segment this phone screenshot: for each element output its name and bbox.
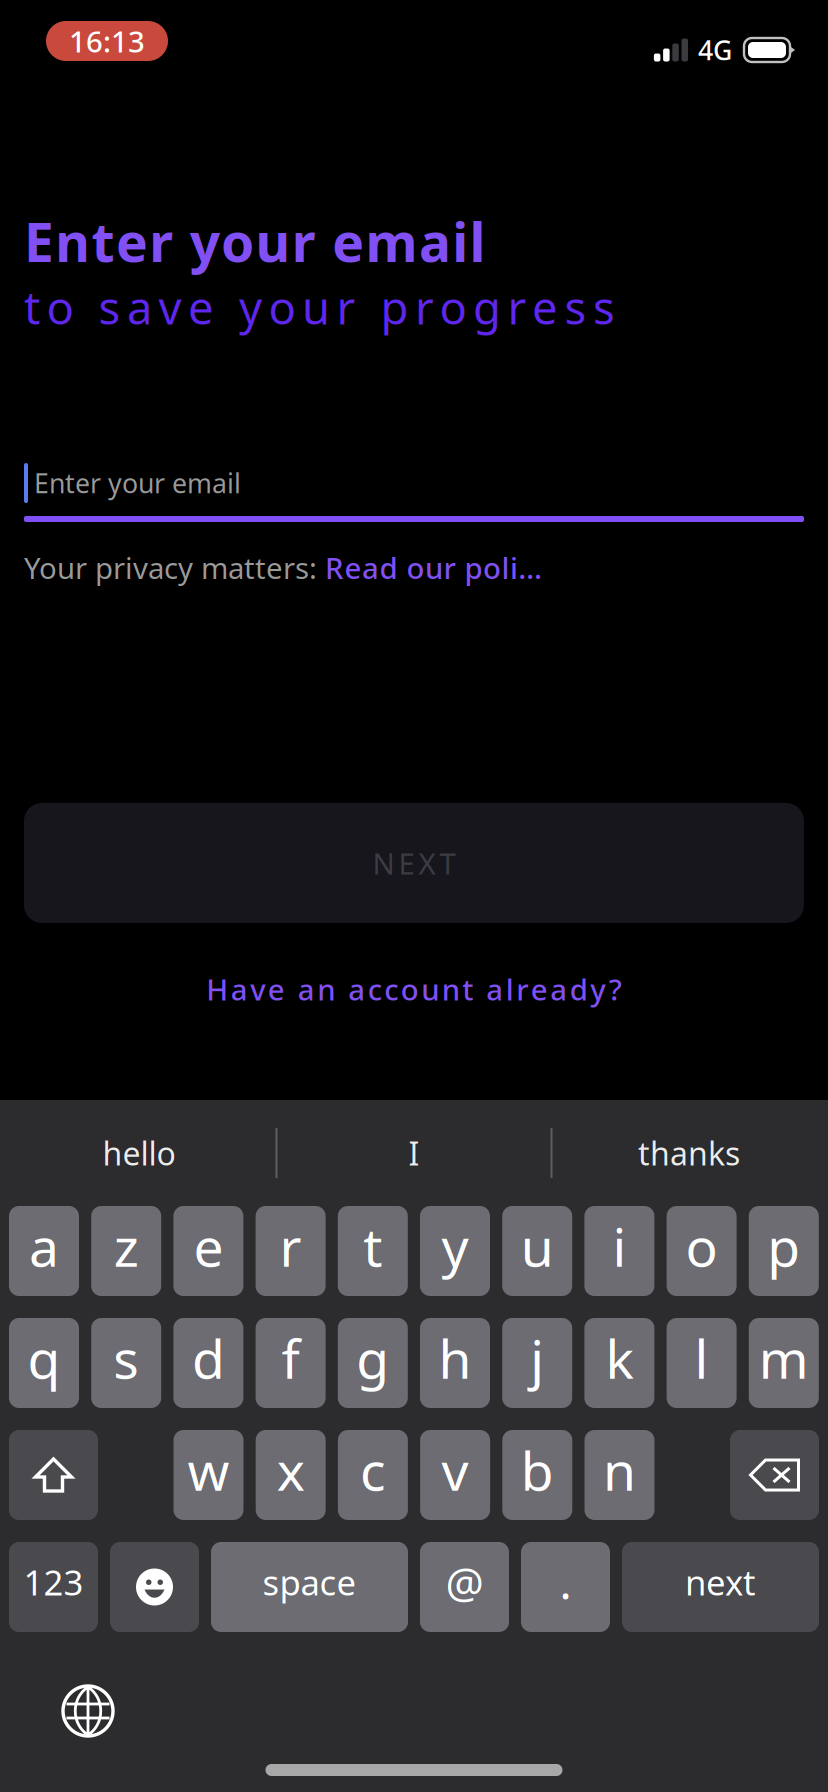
staticText: next xyxy=(685,1559,756,1605)
button[interactable]: @ xyxy=(420,1542,509,1632)
staticText: s xyxy=(113,1323,139,1393)
button[interactable]: 123 xyxy=(9,1542,98,1632)
staticText: v xyxy=(442,1435,469,1505)
button[interactable]: a xyxy=(9,1206,79,1296)
button[interactable]: i xyxy=(584,1206,654,1296)
button[interactable]: l xyxy=(667,1318,737,1408)
button[interactable]: Switch keyboard xyxy=(57,1680,119,1742)
button[interactable]: e xyxy=(173,1206,243,1296)
staticText: k xyxy=(605,1323,633,1393)
button[interactable]: q xyxy=(9,1318,79,1408)
staticText: q xyxy=(27,1323,60,1393)
button[interactable]: g xyxy=(338,1318,408,1408)
button[interactable]: n xyxy=(584,1430,654,1520)
button[interactable]: c xyxy=(338,1430,408,1520)
staticText: h xyxy=(438,1323,471,1393)
button[interactable]: h xyxy=(420,1318,490,1408)
button[interactable]: . xyxy=(521,1542,610,1632)
button[interactable]: b xyxy=(502,1430,572,1520)
staticText: o xyxy=(686,1211,718,1281)
staticText: f xyxy=(282,1323,300,1393)
staticText: Enter your email xyxy=(34,465,241,501)
staticText: t xyxy=(363,1211,382,1281)
staticText: r xyxy=(280,1211,302,1281)
staticText: m xyxy=(759,1323,809,1393)
button[interactable]: f xyxy=(256,1318,326,1408)
button[interactable]: x xyxy=(256,1430,326,1520)
staticText: . xyxy=(559,1552,571,1612)
staticText: hello xyxy=(102,1132,175,1174)
button[interactable]: space xyxy=(211,1542,408,1632)
staticText: Read our policy xyxy=(325,548,547,587)
staticText: I xyxy=(408,1132,419,1174)
staticText: x xyxy=(277,1435,305,1505)
button[interactable]: Have an account already? xyxy=(24,945,804,1033)
button[interactable]: r xyxy=(256,1206,326,1296)
staticText: @ xyxy=(445,1554,483,1610)
button[interactable]: thanks xyxy=(552,1100,825,1206)
button[interactable]: s xyxy=(91,1318,161,1408)
staticText: Enter your email xyxy=(24,206,485,277)
button[interactable]: m xyxy=(749,1318,819,1408)
staticText: j xyxy=(530,1323,544,1393)
staticText: a xyxy=(29,1211,59,1281)
staticText: Your privacy matters: xyxy=(24,548,325,587)
staticText: 4G xyxy=(698,32,732,68)
button[interactable]: next xyxy=(622,1542,819,1632)
staticText: u xyxy=(521,1211,554,1281)
button[interactable]: k xyxy=(584,1318,654,1408)
button[interactable]: o xyxy=(667,1206,737,1296)
staticText: e xyxy=(193,1211,223,1281)
staticText: NEXT xyxy=(372,843,455,882)
button[interactable]: Shift xyxy=(9,1430,98,1520)
button[interactable]: v xyxy=(420,1430,490,1520)
button[interactable]: z xyxy=(91,1206,161,1296)
staticText: to save your progress xyxy=(24,277,615,337)
staticText: y xyxy=(441,1211,468,1281)
button[interactable]: t xyxy=(338,1206,408,1296)
staticText: z xyxy=(114,1211,139,1281)
staticText: l xyxy=(695,1323,709,1393)
button[interactable]: Emoji xyxy=(110,1542,199,1632)
staticText: thanks xyxy=(638,1132,740,1174)
button[interactable]: p xyxy=(749,1206,819,1296)
staticText: b xyxy=(521,1435,554,1505)
staticText: p xyxy=(767,1211,800,1281)
staticText: n xyxy=(603,1435,636,1505)
button[interactable]: d xyxy=(173,1318,243,1408)
button[interactable]: Read our policy xyxy=(325,548,547,587)
staticText: space xyxy=(262,1559,356,1605)
button[interactable]: I xyxy=(277,1100,550,1206)
button[interactable]: hello xyxy=(2,1100,275,1206)
button[interactable]: j xyxy=(502,1318,572,1408)
staticText: d xyxy=(192,1323,225,1393)
staticText: 123 xyxy=(23,1559,83,1605)
button[interactable]: w xyxy=(173,1430,243,1520)
button[interactable]: y xyxy=(420,1206,490,1296)
staticText: w xyxy=(187,1435,229,1505)
button[interactable]: Delete xyxy=(730,1430,819,1520)
staticText: g xyxy=(356,1323,389,1393)
staticText: Have an account already? xyxy=(206,969,622,1008)
staticText: i xyxy=(612,1211,626,1281)
button[interactable]: u xyxy=(502,1206,572,1296)
staticText: 16:13 xyxy=(69,21,145,60)
staticText: c xyxy=(360,1435,386,1505)
